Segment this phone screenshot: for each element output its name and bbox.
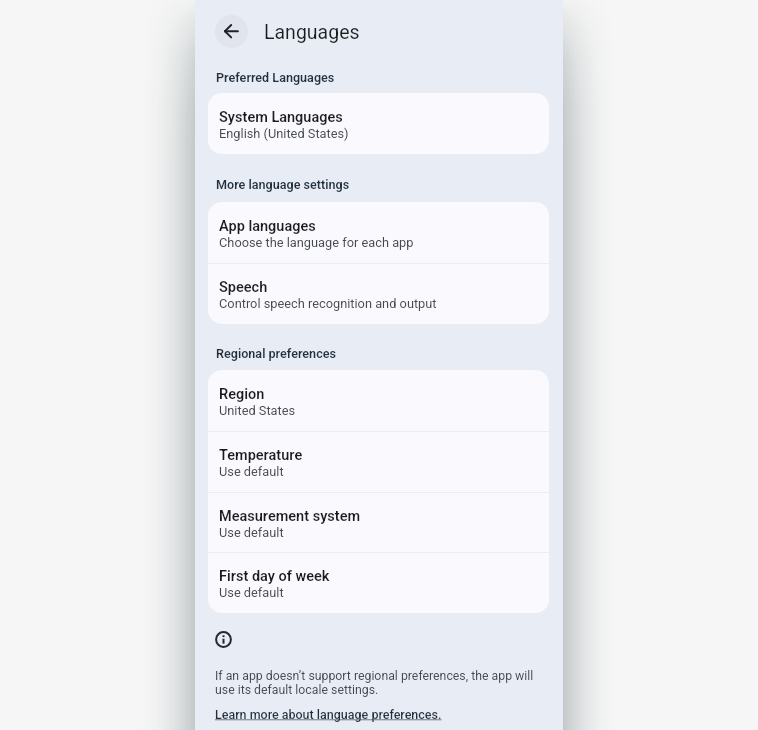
staticText: Languages bbox=[264, 21, 360, 44]
staticText: Regional preferences bbox=[216, 346, 336, 361]
staticText: Choose the language for each app bbox=[219, 235, 414, 250]
staticText: More language settings bbox=[216, 177, 350, 192]
staticText: If an app doesn’t support regional prefe… bbox=[215, 669, 545, 697]
button[interactable]: App languages bbox=[208, 202, 549, 263]
button[interactable]: Speech bbox=[208, 263, 549, 324]
button[interactable]: First day of week bbox=[208, 552, 549, 613]
staticText: Preferred Languages bbox=[216, 70, 335, 85]
staticText: Temperature bbox=[219, 447, 303, 464]
button[interactable]: Learn more about language preferences. bbox=[215, 707, 442, 722]
staticText: Control speech recognition and output bbox=[219, 296, 437, 311]
button[interactable]: System Languages bbox=[208, 93, 549, 154]
staticText: English (United States) bbox=[219, 126, 349, 141]
other: Information bbox=[214, 630, 233, 649]
button[interactable]: Measurement system bbox=[208, 492, 549, 553]
staticText: Region bbox=[219, 386, 265, 403]
button[interactable]: Region bbox=[208, 370, 549, 431]
staticText: App languages bbox=[219, 218, 316, 235]
staticText: Speech bbox=[219, 279, 268, 296]
staticText: United States bbox=[219, 403, 296, 418]
staticText: Measurement system bbox=[219, 508, 361, 525]
button[interactable]: Navigate back bbox=[215, 15, 248, 48]
staticText: Learn more about language preferences. bbox=[215, 707, 442, 722]
staticText: System Languages bbox=[219, 109, 343, 126]
staticText: Use default bbox=[219, 525, 284, 540]
staticText: First day of week bbox=[219, 568, 330, 585]
staticText: Use default bbox=[219, 585, 284, 600]
button[interactable]: Temperature bbox=[208, 431, 549, 492]
staticText: Use default bbox=[219, 464, 284, 479]
